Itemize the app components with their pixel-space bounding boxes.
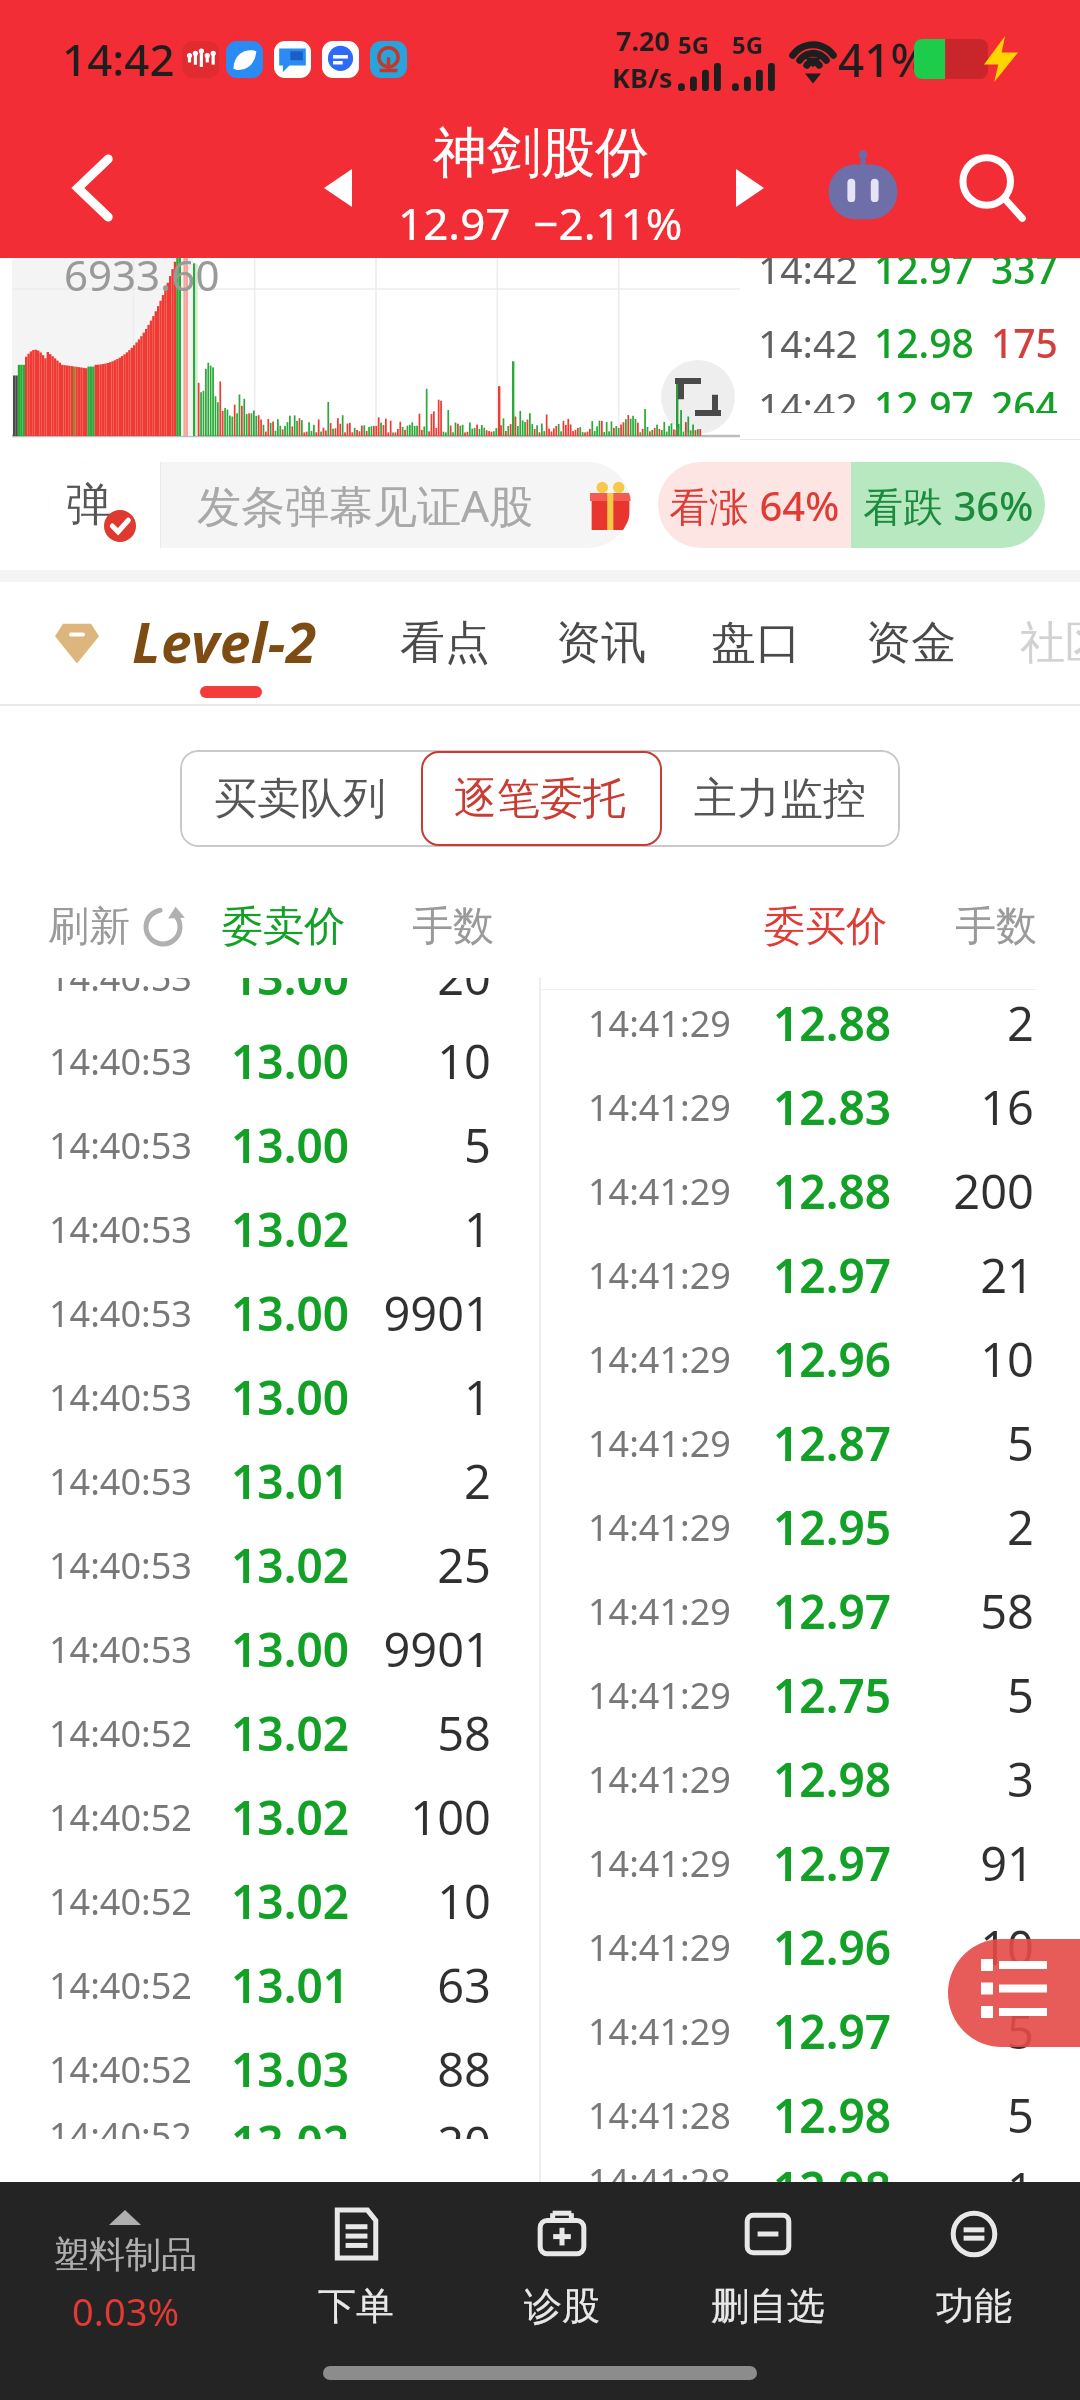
- staticText: 14:41:28: [588, 2091, 731, 2140]
- staticText: 14:40:53: [49, 1289, 192, 1338]
- button[interactable]: AI assistant: [805, 118, 921, 258]
- button[interactable]: 14:40:53: [0, 1523, 539, 1607]
- staticText: 58: [341, 1701, 491, 1765]
- staticText: 88: [341, 2037, 491, 2101]
- button[interactable]: 14:40:53: [0, 1187, 539, 1271]
- button[interactable]: 资讯: [538, 582, 664, 704]
- staticText: 13.02: [149, 1786, 349, 1849]
- button[interactable]: 删自选: [678, 2182, 858, 2350]
- button[interactable]: 功能: [884, 2182, 1064, 2350]
- button[interactable]: 买卖队列: [180, 750, 420, 847]
- button[interactable]: 14:41:29: [541, 1989, 1080, 2073]
- staticText: 塑料制品: [53, 2232, 197, 2277]
- staticText: 10: [884, 1915, 1034, 1979]
- button[interactable]: 14:41:29: [541, 1569, 1080, 1653]
- staticText: 12.97 −2.11%: [398, 193, 683, 253]
- button[interactable]: 手数: [955, 901, 1037, 953]
- button[interactable]: Back: [40, 118, 146, 258]
- button[interactable]: 14:41:28: [541, 2073, 1080, 2157]
- button[interactable]: 14:41:29: [541, 1233, 1080, 1317]
- staticText: 12.98: [691, 1748, 891, 1811]
- button[interactable]: 14:40:52: [0, 2111, 539, 2139]
- button[interactable]: 看跌 36%: [851, 462, 1045, 548]
- button[interactable]: Next stock: [692, 118, 808, 258]
- button[interactable]: 14:40:53: [0, 1019, 539, 1103]
- staticText: 12.98: [691, 2084, 891, 2147]
- staticText: 175: [991, 316, 1058, 369]
- staticText: 14:42: [758, 379, 858, 413]
- staticText: 13.00: [149, 1366, 349, 1429]
- button[interactable]: 14:41:29: [541, 1065, 1080, 1149]
- button[interactable]: 14:40:53: [0, 1607, 539, 1691]
- staticText: 14:41:29: [588, 1587, 731, 1636]
- button[interactable]: 14:40:53: [0, 1271, 539, 1355]
- button[interactable]: 14:40:53: [0, 1103, 539, 1187]
- staticText: 主力监控: [694, 772, 866, 826]
- staticText: 13.01: [149, 1954, 349, 2017]
- button[interactable]: 委买价: [764, 901, 887, 953]
- button[interactable]: 逐笔委托: [420, 750, 660, 847]
- button[interactable]: 主力监控: [660, 750, 900, 847]
- button[interactable]: 14:42: [740, 258, 1080, 305]
- staticText: 13.02: [149, 1870, 349, 1933]
- staticText: 5: [341, 1113, 491, 1177]
- button[interactable]: 塑料制品: [0, 2182, 250, 2342]
- staticText: 12.83: [691, 1076, 891, 1139]
- staticText: 14:40:52: [49, 1793, 192, 1842]
- button[interactable]: 社区: [1002, 582, 1080, 704]
- button[interactable]: 资金: [848, 582, 974, 704]
- staticText: 手数: [955, 901, 1037, 953]
- button[interactable]: Previous stock: [280, 118, 396, 258]
- staticText: 看涨 64%: [669, 478, 840, 533]
- button[interactable]: 14:41:28: [541, 2157, 1080, 2182]
- button[interactable]: Level-2: [30, 582, 360, 704]
- button[interactable]: 14:40:53: [0, 1355, 539, 1439]
- button[interactable]: 下单: [266, 2182, 446, 2350]
- button[interactable]: 弹: [48, 462, 631, 548]
- button[interactable]: 14:40:53: [0, 1439, 539, 1523]
- button[interactable]: 14:40:53: [0, 978, 539, 1019]
- button[interactable]: 刷新: [48, 901, 184, 953]
- button[interactable]: 14:40:52: [0, 1943, 539, 2027]
- button[interactable]: 14:41:29: [541, 1485, 1080, 1569]
- button[interactable]: 14:41:29: [541, 1149, 1080, 1233]
- button[interactable]: 14:41:29: [541, 1905, 1080, 1989]
- button[interactable]: Full screen chart: [661, 360, 735, 434]
- button[interactable]: Search: [934, 118, 1050, 258]
- staticText: 14:41:29: [588, 1839, 731, 1888]
- button[interactable]: 手数: [412, 901, 494, 953]
- button[interactable]: Order list: [948, 1939, 1080, 2047]
- staticText: 14:40:52: [49, 2045, 192, 2094]
- button[interactable]: 14:41:29: [541, 1737, 1080, 1821]
- staticText: 1: [341, 1197, 491, 1261]
- button[interactable]: 14:42: [740, 305, 1080, 379]
- staticText: 14:40:53: [49, 1205, 192, 1254]
- button[interactable]: 14:40:52: [0, 1775, 539, 1859]
- button[interactable]: 14:41:29: [541, 981, 1080, 1065]
- button[interactable]: 看点: [382, 582, 508, 704]
- staticText: 功能: [936, 2282, 1012, 2330]
- staticText: 13.00: [149, 1282, 349, 1345]
- staticText: 12.97: [874, 258, 974, 295]
- button[interactable]: 委卖价: [222, 901, 345, 953]
- staticText: 14:41:29: [588, 1335, 731, 1384]
- button[interactable]: 诊股: [472, 2182, 652, 2350]
- button[interactable]: 14:40:52: [0, 1691, 539, 1775]
- staticText: 6933.60: [64, 246, 220, 303]
- staticText: 13.01: [149, 1450, 349, 1513]
- button[interactable]: 14:41:29: [541, 1317, 1080, 1401]
- staticText: 14:42: [62, 29, 175, 89]
- button[interactable]: 14:41:29: [541, 1821, 1080, 1905]
- staticText: 委买价: [764, 901, 887, 953]
- button[interactable]: 盘口: [693, 582, 819, 704]
- staticText: 12.97: [691, 1244, 891, 1307]
- staticText: 12.96: [691, 1328, 891, 1391]
- staticText: 91: [884, 1831, 1034, 1895]
- button[interactable]: 看涨 64%: [658, 462, 851, 548]
- staticText: 14:41:29: [588, 1503, 731, 1552]
- button[interactable]: 14:41:29: [541, 1401, 1080, 1485]
- button[interactable]: 14:40:52: [0, 2027, 539, 2111]
- button[interactable]: 14:40:52: [0, 1859, 539, 1943]
- button[interactable]: 14:41:29: [541, 1653, 1080, 1737]
- button[interactable]: 14:42: [740, 379, 1080, 413]
